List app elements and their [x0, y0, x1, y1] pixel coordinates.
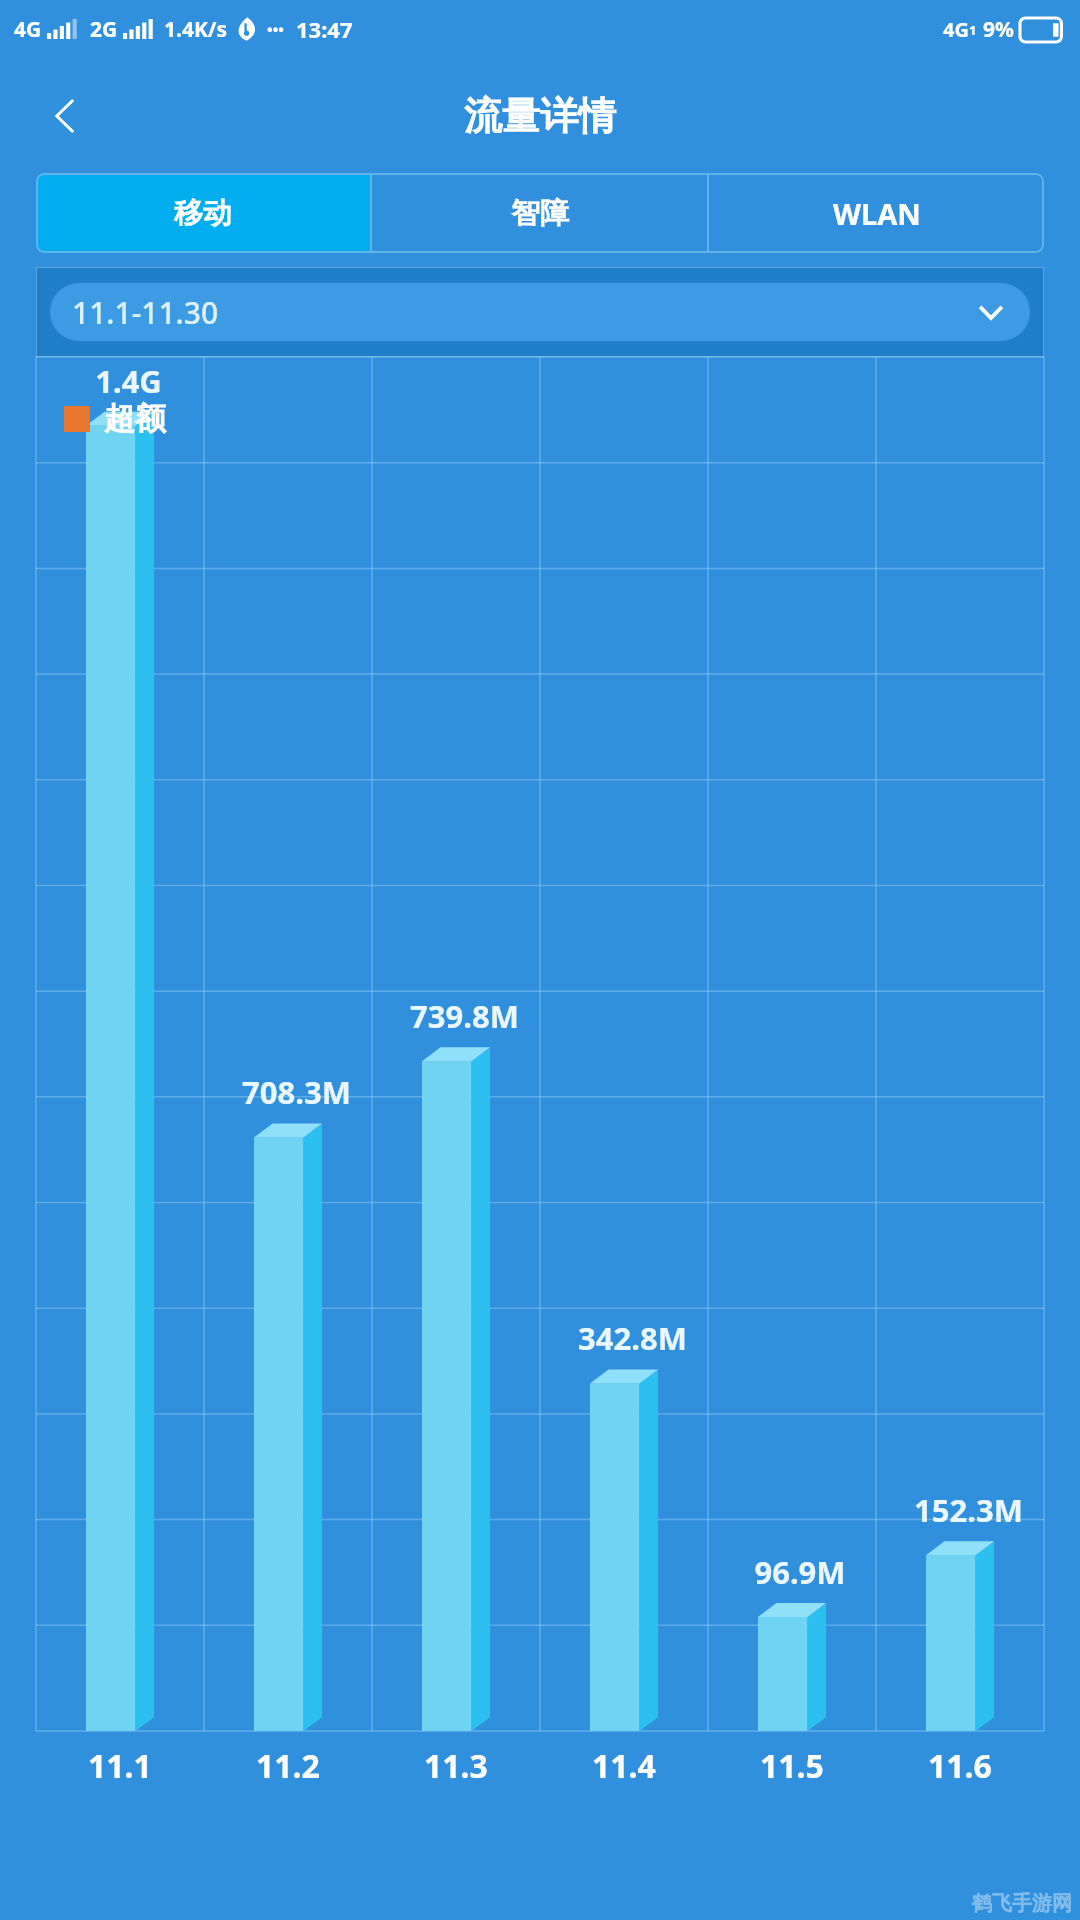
- staticText: 13:47: [296, 14, 353, 44]
- staticText: 11.1: [88, 1744, 152, 1788]
- staticText: 移动: [174, 195, 232, 232]
- staticText: 96.9M: [754, 1551, 846, 1593]
- staticText: 11.1-11.30: [72, 292, 219, 333]
- staticText: 11.4: [592, 1744, 656, 1788]
- staticText: WLAN: [833, 194, 921, 233]
- button[interactable]: 移动: [36, 173, 370, 253]
- staticText: 鹤飞手游网: [972, 1891, 1072, 1916]
- staticText: 智障: [511, 195, 569, 232]
- button[interactable]: WLAN: [709, 173, 1044, 253]
- staticText: •••: [267, 19, 284, 39]
- staticText: 4G: [14, 15, 42, 44]
- staticText: 152.3M: [914, 1489, 1023, 1531]
- staticText: 流量详情: [464, 92, 616, 140]
- staticText: 342.8M: [578, 1317, 687, 1359]
- button[interactable]: Back: [34, 84, 98, 148]
- staticText: 739.8M: [410, 995, 519, 1037]
- staticText: 2G: [90, 15, 118, 44]
- button[interactable]: 11.1-11.30: [50, 283, 1030, 341]
- staticText: 708.3M: [242, 1071, 351, 1113]
- staticText: 11.2: [256, 1744, 320, 1788]
- staticText: 11.3: [424, 1744, 488, 1788]
- staticText: 11.6: [928, 1744, 992, 1788]
- staticText: 11.5: [760, 1744, 824, 1788]
- button[interactable]: 智障: [372, 173, 707, 253]
- staticText: 4G: [943, 16, 969, 43]
- staticText: 超额: [104, 399, 166, 438]
- staticText: 1: [969, 21, 977, 39]
- staticText: 9%: [983, 15, 1014, 44]
- staticText: 1.4K/s: [164, 15, 228, 44]
- staticText: 1.4G: [95, 360, 162, 402]
